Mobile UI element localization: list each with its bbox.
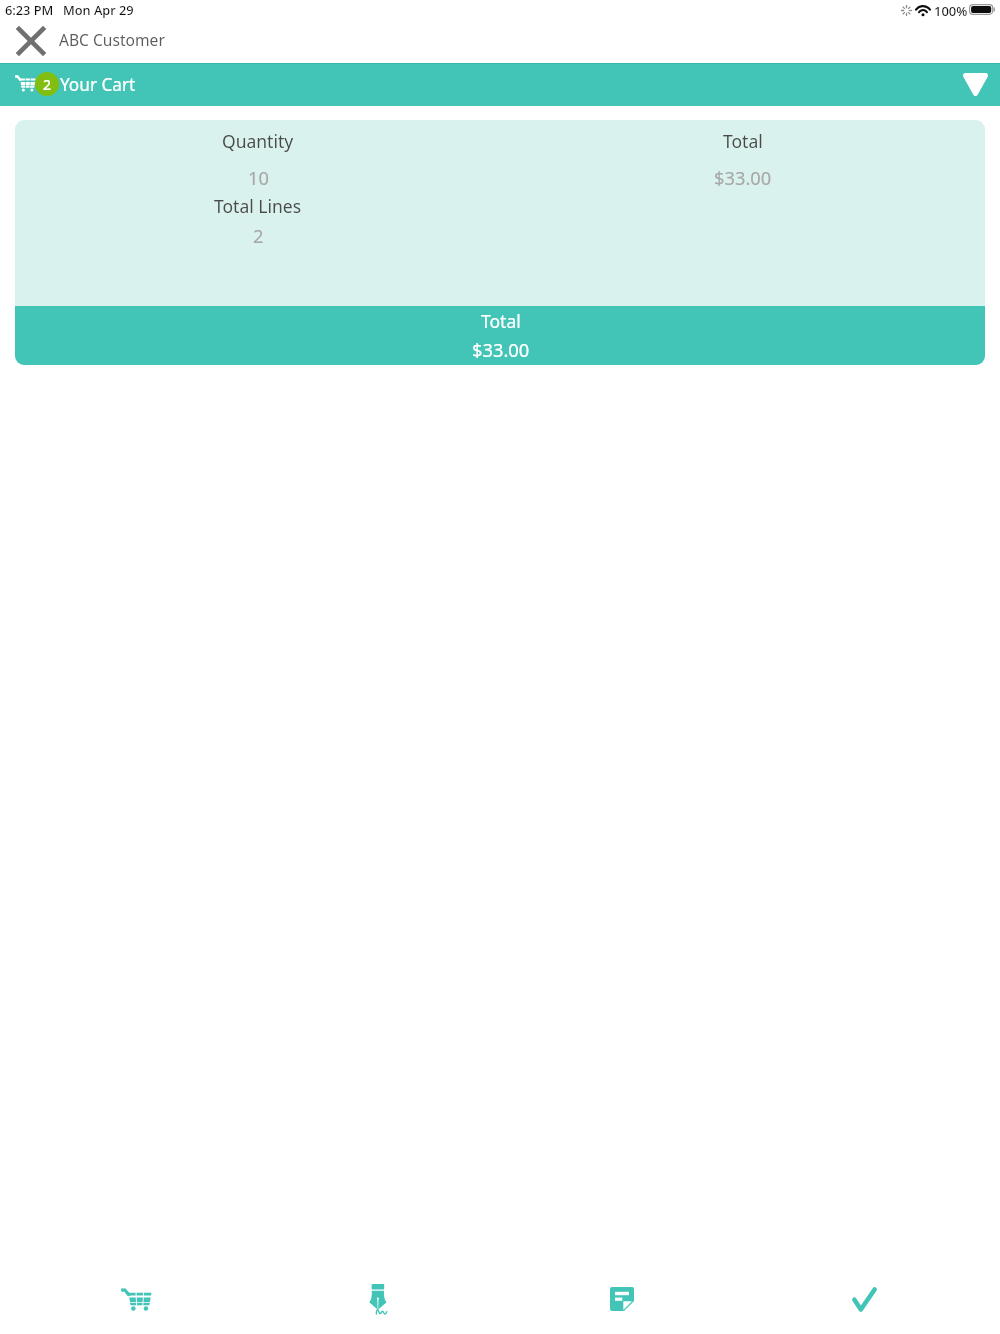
button[interactable]: Signature [257, 1267, 499, 1331]
staticText: Total [481, 309, 521, 333]
staticText: Quantity [222, 129, 294, 153]
button[interactable]: 2 [0, 63, 1000, 106]
staticText: Total [723, 129, 763, 153]
staticText: $33.00 [714, 165, 772, 190]
staticText: 100% [934, 2, 968, 20]
staticText: 6:23 PM [5, 1, 54, 18]
staticText: ABC Customer [59, 29, 165, 50]
staticText: Your Cart [60, 73, 136, 96]
button[interactable]: Notes [499, 1267, 742, 1331]
button[interactable]: Close [0, 18, 61, 63]
staticText: 2 [43, 75, 52, 94]
staticText: 10 [248, 165, 269, 190]
button[interactable]: Confirm order [742, 1267, 985, 1331]
staticText: 2 [253, 223, 264, 248]
staticText: Total Lines [214, 194, 302, 218]
button[interactable]: Collapse cart [952, 63, 998, 106]
staticText: Mon Apr 29 [63, 1, 134, 18]
button[interactable]: Cart [15, 1267, 257, 1331]
staticText: $33.00 [472, 337, 530, 362]
